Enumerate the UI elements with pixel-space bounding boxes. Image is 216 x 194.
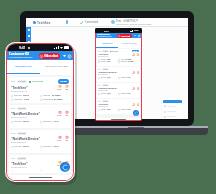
staticText: 38 Mbps [52,94,61,97]
staticText: CHANNEL ANALYZER [122,42,137,44]
staticText: Security [14,120,22,123]
staticText: Last updated 2 min ago [97,36,112,38]
staticText: Appointment · Remote Session ended [116,23,152,26]
button[interactable]: CHANNEL ANALYZER [40,60,73,75]
button[interactable]: ch 6 [9,155,71,173]
staticText: Security [101,109,107,111]
button[interactable]: Video chat [39,53,60,59]
button[interactable]: Sort [133,34,136,37]
staticText: Video chat [121,35,131,37]
staticText: “NetWorkDevice” [11,136,41,141]
staticText: ch 6 [11,132,16,135]
staticText: “NetWorkDevice” [98,71,117,74]
staticText: 47% [132,105,135,107]
staticText: 2.4GHz [103,100,108,102]
staticText: 90 Mbps [128,61,134,63]
staticText: “TechSee” [11,85,28,90]
button[interactable]: CHANNEL ANALYZER [118,38,141,48]
staticText: 90 Mbps [54,98,63,101]
staticText: 9:41 [19,45,26,50]
staticText: -62 [65,88,69,91]
staticText: 79% [134,29,139,32]
staticText: Security [14,94,22,97]
staticText: ch 6 [11,107,16,110]
button[interactable]: Settings [137,34,140,37]
staticText: 4.5m [24,98,30,101]
staticText: Security [14,145,22,148]
staticText: Security [101,59,107,61]
button[interactable]: Refresh scan [60,162,70,172]
staticText: 7.5 m [53,120,59,123]
staticText: 9:41 [104,29,109,32]
staticText: -62 [137,89,139,91]
staticText: NETWORK LIST [15,65,32,68]
staticText: WPA2 [23,94,29,97]
button[interactable]: ch 6 [97,99,140,114]
button[interactable]: ch 6 [97,67,140,82]
button[interactable]: ch 6 [97,83,140,98]
staticText: 7.5 m [127,93,131,95]
staticText: bc:28:ca:a7:21:40 [98,56,109,58]
staticText: 2.4GHz [103,50,108,52]
staticText: Distance [101,61,107,63]
staticText: Customer ID [97,33,110,36]
staticText: Distance [121,77,127,79]
staticText: -62 [65,139,69,142]
staticText: “NetWorkDevice” [98,87,117,90]
staticText: ch 6 [11,80,16,83]
staticText: Distance [43,120,52,123]
staticText: Tom - 6948779271 [116,19,139,23]
button[interactable]: ch 6 [9,130,71,153]
staticText: -62 [137,73,139,75]
staticText: “TechSee” [98,53,109,56]
staticText: 47% [57,114,62,117]
staticText: Distance [14,98,23,101]
staticText: bc:28:ca:a7:21:41 [11,166,28,169]
staticText: Last updated 2 min ago [9,56,33,59]
staticText: b9:30:ff:2a:ed:70 [98,90,109,92]
staticText: 47% [132,73,135,75]
button[interactable]: ch 6 [9,105,71,128]
staticText: Customer ID [9,52,29,56]
staticText: WPA2 [23,145,29,148]
staticText: 7.5 m [127,109,131,111]
button[interactable]: ch 6 [9,77,71,103]
staticText: -62 [137,105,139,107]
staticText: 2.4GHz [103,68,108,70]
staticText: Security [101,93,107,95]
staticText: 38 Mbps [126,59,132,61]
staticText: Distance [121,93,127,95]
button[interactable]: Sort [62,54,66,58]
staticText: CHANNEL ANALYZER [45,65,68,68]
staticText: 7.5 m [53,145,59,148]
staticText: WPA2 [107,93,111,95]
staticText: b9:30:ff:2a:ed:70 [11,141,27,144]
staticText: WPA2 [107,109,111,111]
staticText: “NetWorkDevice” [11,111,41,116]
button[interactable]: Settings [67,54,71,58]
staticText: Video chat [44,54,59,58]
button[interactable]: Video chat [117,34,132,38]
staticText: 2.4GHz [18,107,26,110]
staticText: 4.5m [107,61,111,63]
staticText: Download [121,61,128,63]
staticText: bc:28:ca:a7:21:40 [11,90,28,93]
staticText: Upload [43,94,51,97]
staticText: NETWORK LIST [102,42,113,44]
button[interactable]: NETWORK LIST [96,38,118,48]
staticText: 7.5 m [127,77,131,79]
staticText: 2.4GHz [18,132,26,135]
staticText: Distance [43,145,52,148]
staticText: Security [101,77,107,79]
staticText: -62 [65,164,69,167]
staticText: Upload [121,59,126,61]
staticText: ch 6 [98,50,101,52]
button[interactable]: Refresh scan [133,110,139,116]
button[interactable]: ch 6 [97,49,140,66]
staticText: Distance [121,109,127,111]
button[interactable]: NETWORK LIST [7,60,40,75]
staticText: ch 6 [98,100,101,102]
